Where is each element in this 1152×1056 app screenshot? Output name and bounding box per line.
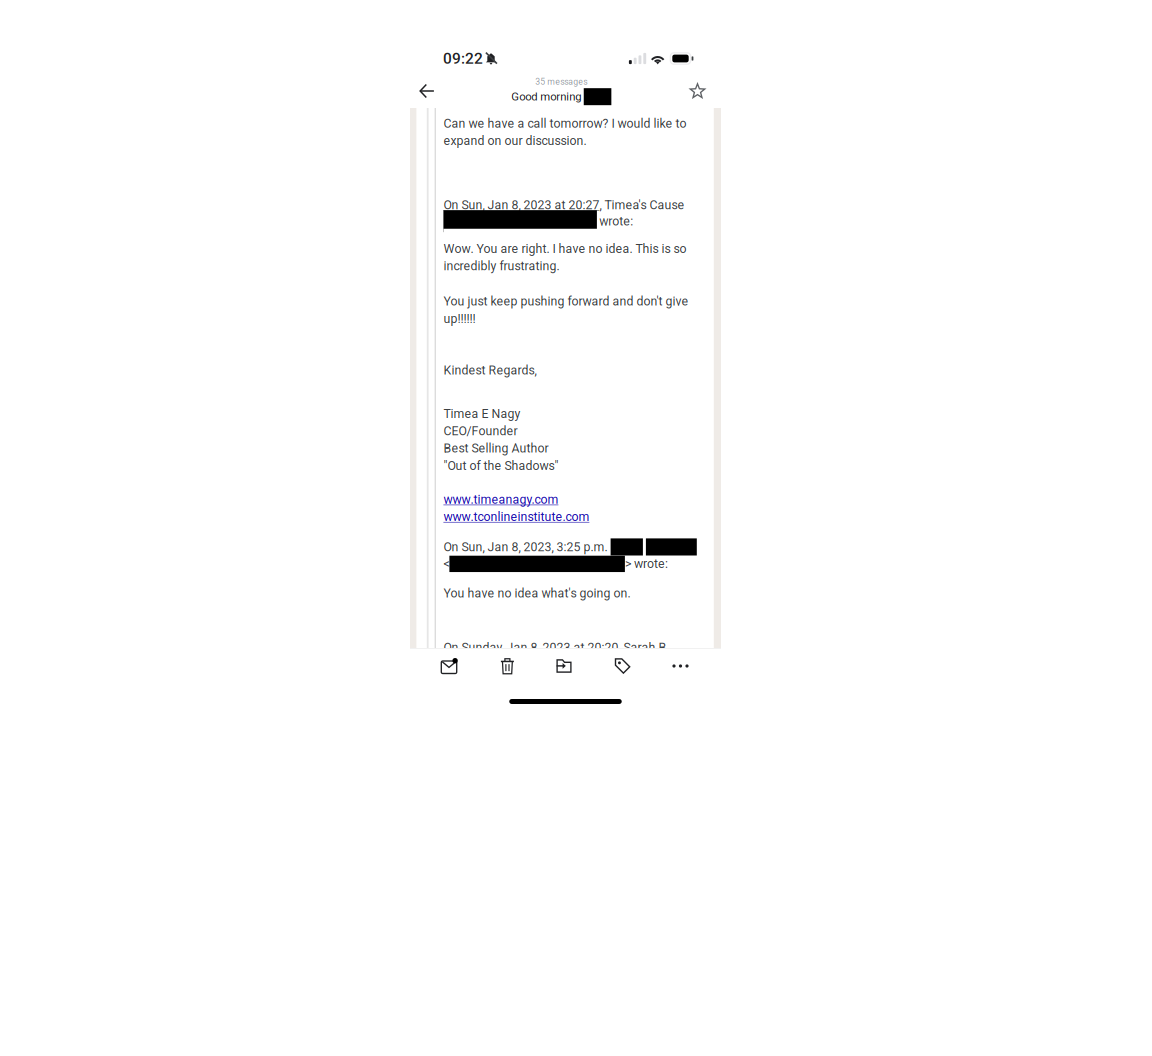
staticText: On Sun, Jan 8, 2023 at 20:27, Timea's Ca… — [443, 198, 684, 212]
staticText: Good morning — [511, 90, 581, 103]
staticText: CEO/Founder — [443, 424, 517, 438]
staticText: On Sun, Jan 8, 2023, 3:25 p.m. — [443, 540, 607, 554]
staticText: 35 messages — [535, 77, 587, 87]
staticText: Wow. You are right. I have no idea. This… — [443, 242, 686, 256]
staticText: www.timeanagy.com — [443, 492, 558, 507]
staticText: < — [443, 557, 449, 571]
staticText: wrote: — [599, 214, 633, 228]
staticText: Timea E Nagy — [443, 407, 520, 421]
staticText: expand on our discussion. — [443, 134, 586, 148]
staticText: > wrote: — [625, 557, 668, 571]
button[interactable]: More options — [661, 649, 699, 683]
staticText: "Out of the Shadows" — [443, 458, 558, 473]
staticText: On Sunday, Jan 8, 2023 at 20:20, Sarah B… — [443, 640, 669, 655]
staticText: incredibly frustrating. — [443, 259, 559, 273]
button[interactable]: Back — [410, 74, 444, 108]
button[interactable]: Delete — [488, 649, 526, 683]
staticText: Best Selling Author — [443, 441, 548, 456]
button[interactable]: Label — [604, 649, 642, 683]
staticText: 09:22 — [443, 49, 483, 67]
staticText: www.tconlineinstitute.com — [443, 510, 589, 524]
staticText: You just keep pushing forward and don't … — [443, 294, 688, 309]
button[interactable]: Move to — [545, 649, 583, 683]
staticText: Kindest Regards, — [443, 363, 536, 378]
staticText: up!!!!!! — [443, 311, 475, 326]
button[interactable]: Star — [678, 74, 716, 108]
staticText: You have no idea what's going on. — [443, 586, 630, 601]
button[interactable]: Mark unread — [430, 649, 468, 683]
staticText: Can we have a call tomorrow? I would lik… — [443, 116, 686, 131]
